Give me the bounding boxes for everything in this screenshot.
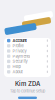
button[interactable]: Payments: [4, 54, 51, 59]
button[interactable]: About: [4, 69, 51, 74]
staticText: Tap to continue setup: [10, 89, 45, 93]
staticText: About: [12, 69, 22, 74]
button[interactable]: Account: [4, 38, 51, 43]
staticText: Account: [12, 38, 26, 43]
staticText: Profile: [12, 43, 23, 48]
staticText: Security: [12, 59, 27, 64]
staticText: Payments: [12, 54, 30, 59]
staticText: Help: [12, 64, 20, 69]
button[interactable]: Help: [4, 64, 51, 69]
staticText: Kim ZDA: [15, 80, 40, 88]
button[interactable]: Privacy: [4, 48, 51, 54]
staticText: Privacy: [12, 49, 26, 53]
button[interactable]: Profile: [4, 43, 51, 48]
button[interactable]: Security: [4, 59, 51, 64]
